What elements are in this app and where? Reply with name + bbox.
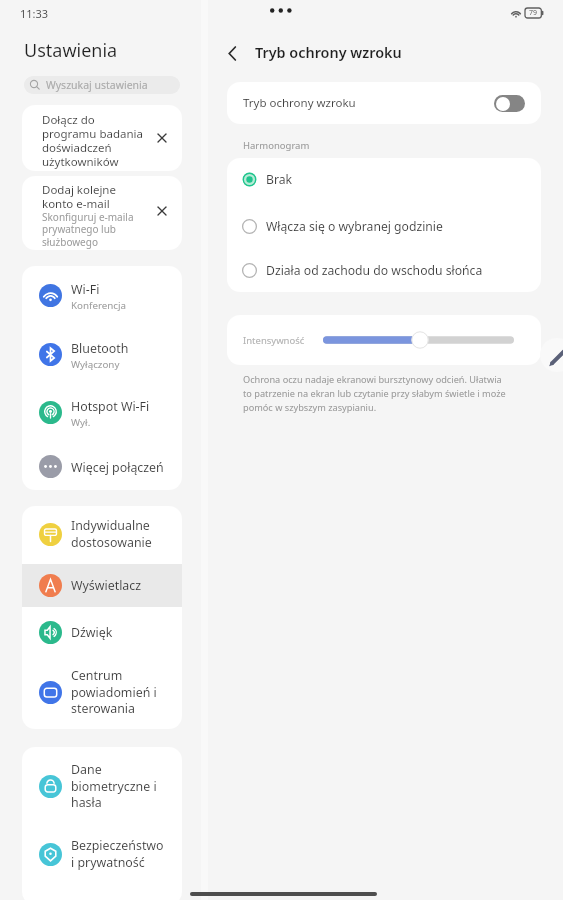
- staticText: Wył.: [71, 416, 91, 429]
- staticText: Działa od zachodu do wschodu słońca: [266, 262, 483, 279]
- button[interactable]: Dane biometryczne i hasła: [22, 758, 182, 814]
- staticText: Wyłączony: [71, 358, 120, 371]
- staticText: Harmonogram: [243, 139, 310, 152]
- button[interactable]: Więcej połączeń: [22, 442, 182, 490]
- staticText: 11:33: [20, 6, 49, 21]
- staticText: Indywidualne dostosowanie: [71, 517, 152, 551]
- staticText: Więcej połączeń: [71, 459, 164, 476]
- staticText: Ustawienia: [24, 38, 118, 63]
- staticText: 79: [529, 8, 538, 18]
- button[interactable]: Hotspot Wi-Fi: [22, 388, 182, 436]
- button[interactable]: Dismiss: [146, 122, 178, 154]
- button[interactable]: Edit: [540, 338, 563, 372]
- button[interactable]: Dźwięk: [22, 608, 182, 656]
- staticText: Brak: [266, 171, 293, 188]
- button[interactable]: Centrum powiadomień i sterowania: [22, 664, 182, 720]
- button[interactable]: Włącza się o wybranej godzinie: [227, 204, 541, 248]
- staticText: Tryb ochrony wzroku: [243, 95, 356, 111]
- staticText: Bezpieczeństwo i prywatność: [71, 837, 164, 871]
- button[interactable]: Back: [218, 39, 246, 67]
- button[interactable]: Dismiss: [146, 195, 178, 227]
- staticText: Konferencja: [71, 299, 127, 312]
- button[interactable]: Bluetooth: [22, 330, 182, 378]
- staticText: Intensywność: [243, 334, 305, 347]
- staticText: Bluetooth: [71, 340, 129, 357]
- button[interactable]: Działa od zachodu do wschodu słońca: [227, 248, 541, 292]
- staticText: Włącza się o wybranej godzinie: [266, 218, 443, 235]
- button[interactable]: Bezpieczeństwo i prywatność: [22, 830, 182, 878]
- staticText: Wyszukaj ustawienia: [46, 78, 148, 92]
- staticText: Dane biometryczne i hasła: [71, 761, 157, 811]
- button[interactable]: Wi-Fi: [22, 271, 182, 319]
- staticText: Dodaj kolejne konto e-mail: [42, 182, 116, 211]
- staticText: Wi-Fi: [71, 281, 100, 298]
- staticText: Tryb ochrony wzroku: [255, 43, 402, 63]
- staticText: Skonfiguruj e-maila prywatnego lub służb…: [42, 210, 134, 249]
- button[interactable]: Wyszukaj ustawienia: [24, 76, 180, 94]
- staticText: Centrum powiadomień i sterowania: [71, 667, 157, 717]
- staticText: Wyświetlacz: [71, 577, 142, 594]
- staticText: Hotspot Wi-Fi: [71, 398, 150, 415]
- button[interactable]: Indywidualne dostosowanie: [22, 510, 182, 558]
- button[interactable]: Brak: [227, 158, 541, 201]
- button[interactable]: Tryb ochrony wzroku: [227, 82, 541, 124]
- button[interactable]: Wyświetlacz: [22, 564, 182, 607]
- staticText: Dźwięk: [71, 624, 113, 641]
- staticText: Ochrona oczu nadaje ekranowi bursztynowy…: [243, 373, 506, 414]
- staticText: Dołącz do programu badania doświadczeń u…: [42, 112, 144, 169]
